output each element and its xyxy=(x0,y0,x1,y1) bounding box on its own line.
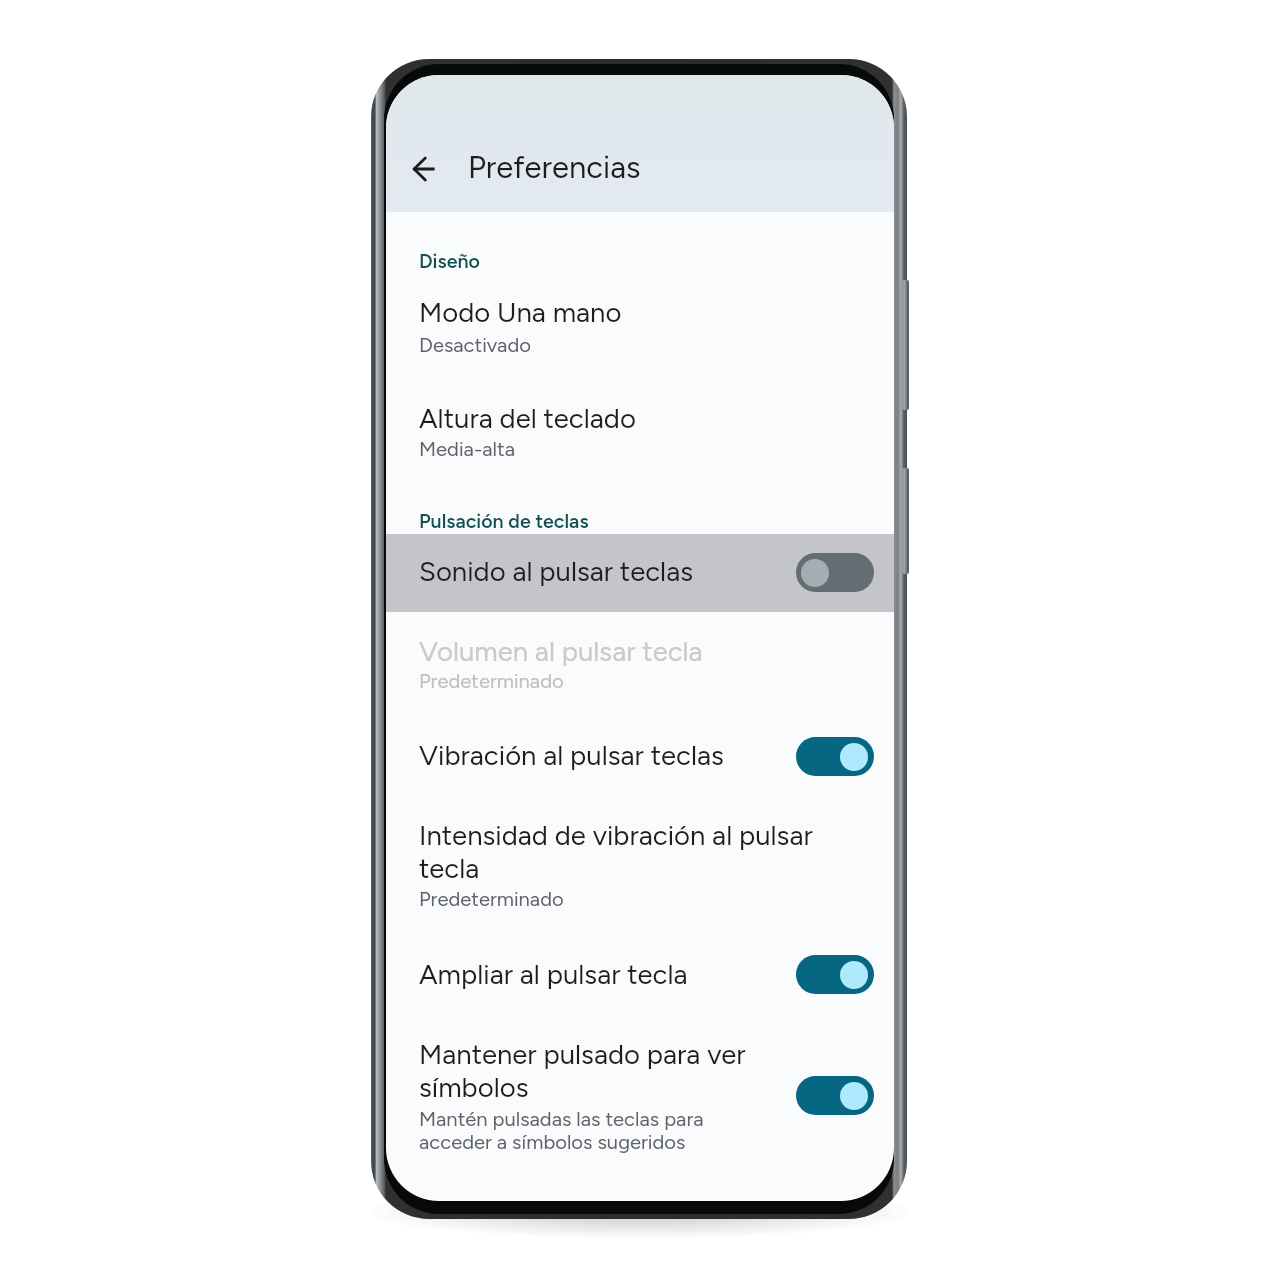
button[interactable] xyxy=(386,225,894,293)
staticText: Mantén pulsadas las teclas para xyxy=(419,1107,704,1131)
staticText: Desactivado xyxy=(419,333,531,357)
button[interactable] xyxy=(386,953,894,1019)
staticText: Altura del teclado xyxy=(419,402,636,435)
button[interactable] xyxy=(386,815,894,917)
staticText: Mantener pulsado para ver xyxy=(419,1038,746,1071)
button[interactable]: Back xyxy=(395,140,452,197)
staticText: Diseño xyxy=(419,249,480,273)
staticText: símbolos xyxy=(419,1071,529,1104)
staticText: Predeterminado xyxy=(419,887,564,911)
button[interactable]: Enabled toggle xyxy=(796,737,874,776)
staticText: Predeterminado xyxy=(419,669,564,693)
staticText: Ampliar al pulsar tecla xyxy=(419,958,688,991)
staticText: Modo Una mano xyxy=(419,296,622,329)
staticText: Volumen al pulsar tecla xyxy=(419,635,703,668)
staticText: tecla xyxy=(419,852,480,885)
staticText: Intensidad de vibración al pulsar xyxy=(419,819,813,852)
staticText: Pulsación de teclas xyxy=(419,509,589,533)
staticText: acceder a símbolos sugeridos xyxy=(419,1130,686,1154)
staticText: Preferencias xyxy=(468,149,641,186)
button[interactable] xyxy=(386,631,894,709)
staticText: Media-alta xyxy=(419,437,515,461)
button[interactable] xyxy=(386,733,894,801)
button[interactable]: Disabled toggle xyxy=(796,553,874,592)
button[interactable]: Enabled toggle xyxy=(796,1076,874,1115)
button[interactable] xyxy=(386,534,894,612)
button[interactable] xyxy=(386,331,894,407)
staticText: Sonido al pulsar teclas xyxy=(419,555,693,588)
staticText: Vibración al pulsar teclas xyxy=(419,739,724,772)
button[interactable] xyxy=(386,1033,894,1155)
button[interactable]: Enabled toggle xyxy=(796,955,874,994)
